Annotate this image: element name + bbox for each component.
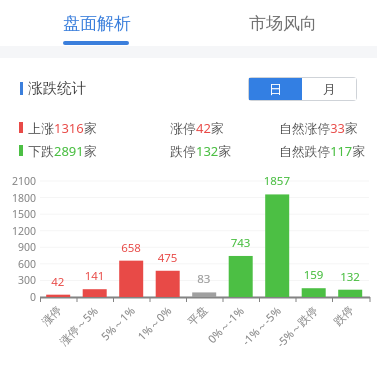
button[interactable]: 市场风向: [216, 0, 349, 46]
staticText: 自然涨停33家: [279, 119, 358, 136]
button[interactable]: 日: [249, 78, 302, 100]
staticText: 上涨1316家: [28, 119, 97, 137]
staticText: 涨停42家: [170, 119, 224, 137]
staticText: 月: [323, 81, 336, 97]
staticText: 自然跌停117家: [279, 142, 365, 159]
staticText: 盘面解析: [63, 13, 131, 34]
button[interactable]: 盘面解析: [30, 0, 163, 46]
staticText: 市场风向: [249, 13, 317, 34]
staticText: 跌停132家: [170, 142, 232, 160]
staticText: 下跌2891家: [28, 142, 97, 160]
staticText: 涨跌统计: [28, 79, 87, 97]
button[interactable]: 月: [302, 78, 356, 100]
staticText: 日: [269, 81, 282, 97]
